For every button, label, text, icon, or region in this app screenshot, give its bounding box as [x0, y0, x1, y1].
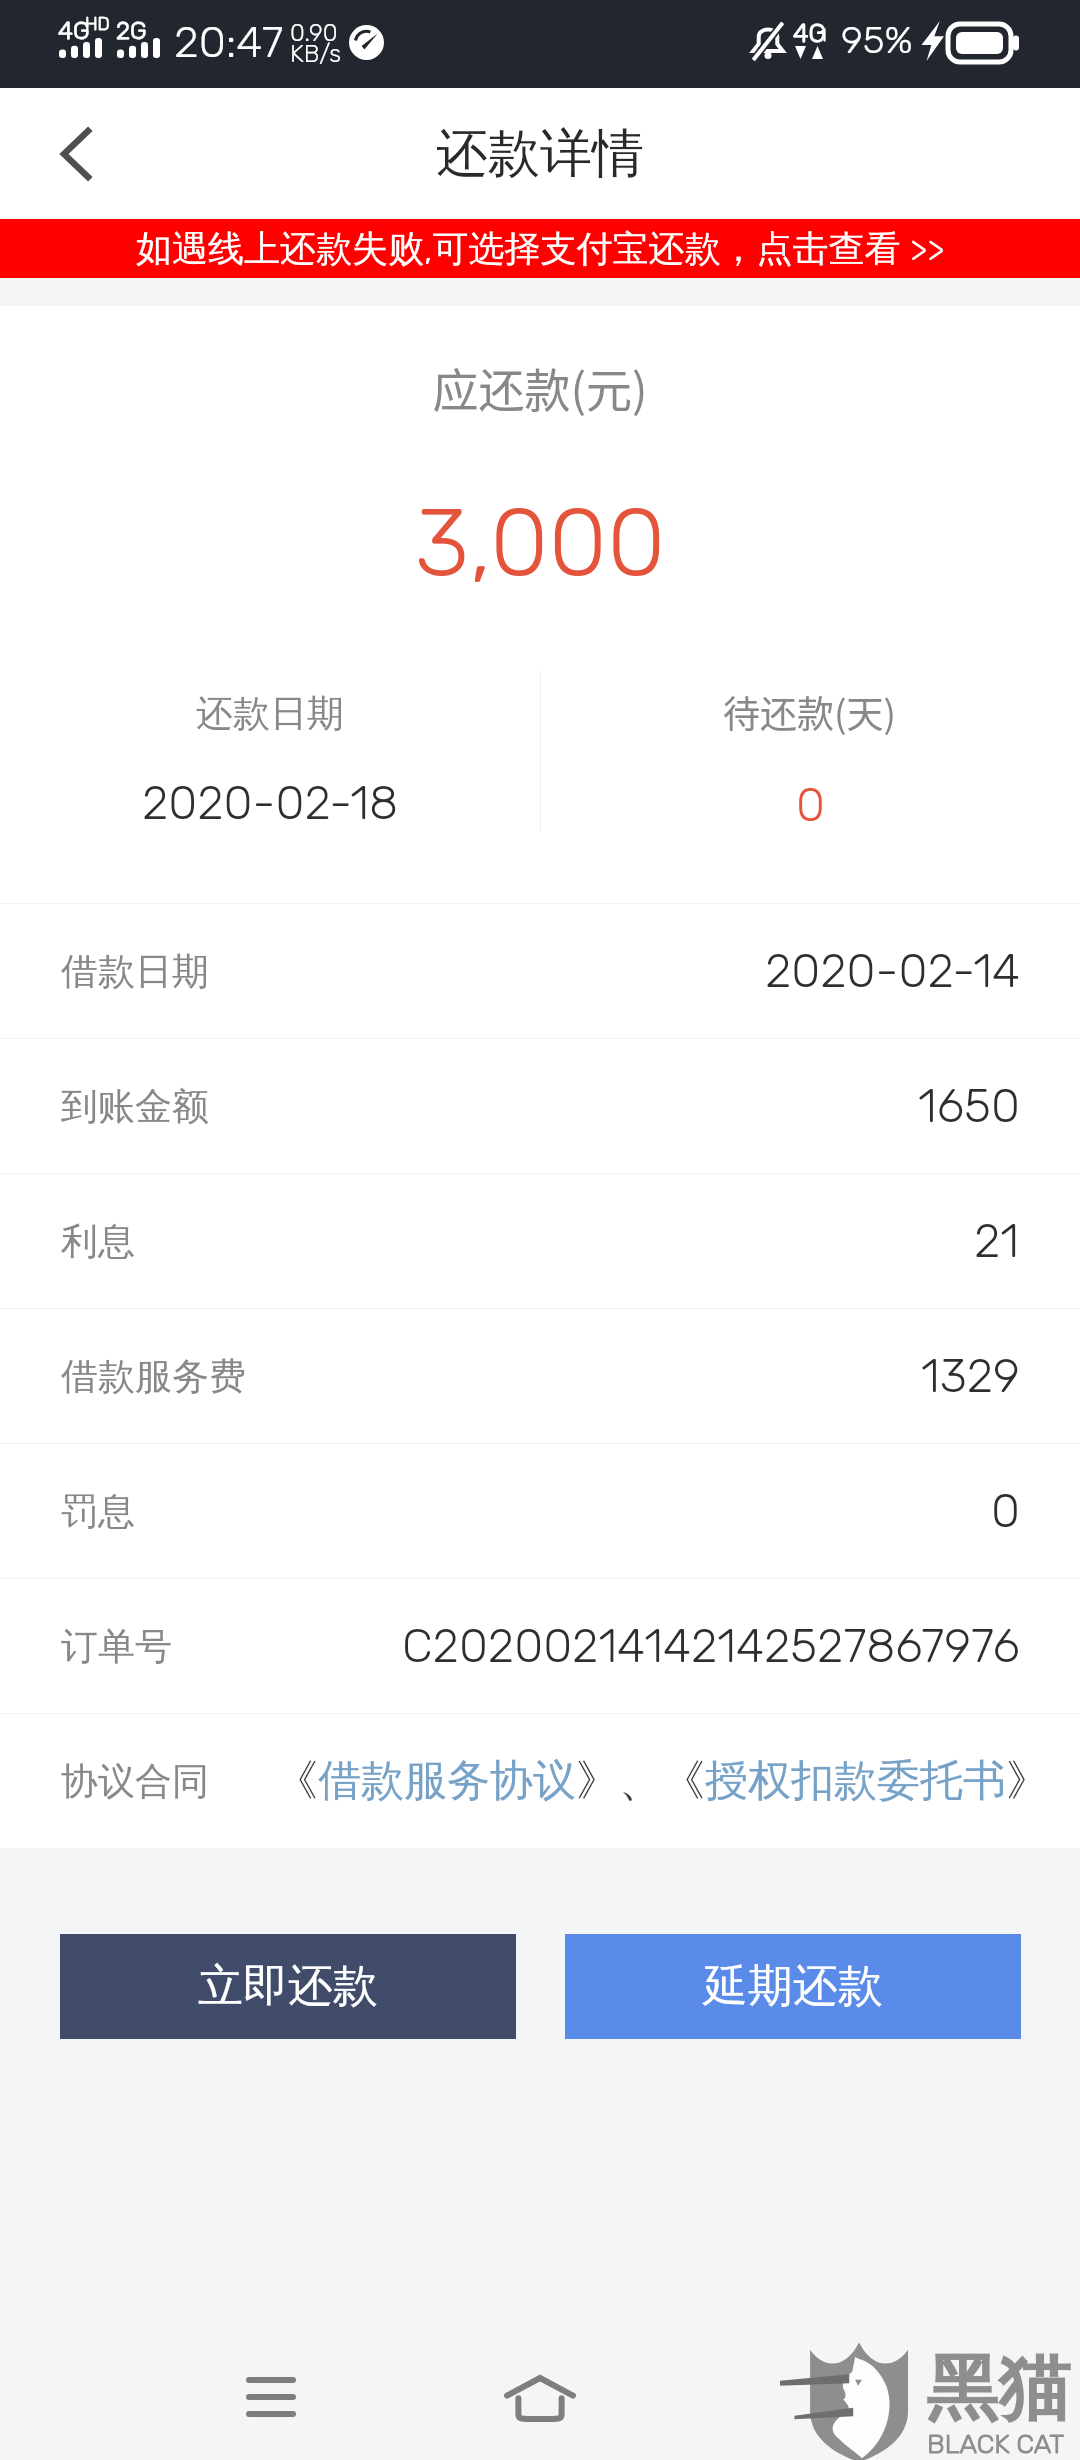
staticText: 》、《: [576, 1754, 705, 1808]
staticText: 1: [820, 26, 827, 45]
staticText: 21: [974, 1213, 1020, 1269]
staticText: 立即还款: [198, 1958, 378, 2015]
button[interactable]: 授权扣款委托书: [705, 1754, 1006, 1808]
button[interactable]: Back: [0, 88, 130, 219]
staticText: C20200214142142527867976: [402, 1618, 1020, 1674]
button[interactable]: 如遇线上还款失败,可选择支付宝还款，点击查看 >>: [0, 219, 1080, 278]
staticText: 4G: [793, 18, 826, 49]
staticText: KB/s: [290, 40, 342, 68]
staticText: HD: [85, 13, 110, 34]
staticText: 利息: [61, 1218, 135, 1265]
staticText: 借款服务费: [61, 1353, 246, 1400]
staticText: 1329: [921, 1348, 1020, 1404]
staticText: 2020-02-14: [765, 943, 1020, 999]
staticText: 还款详情: [436, 121, 644, 187]
staticText: 2G: [116, 16, 147, 46]
staticText: 》: [1006, 1754, 1020, 1808]
staticText: 0.90: [290, 19, 338, 47]
staticText: 95%: [841, 17, 913, 62]
staticText: 协议合同: [61, 1758, 209, 1805]
staticText: 0: [796, 777, 825, 833]
staticText: 0: [991, 1483, 1020, 1539]
staticText: BLACK CAT: [927, 2428, 1065, 2460]
staticText: 如遇线上还款失败,可选择支付宝还款，点击查看 >>: [136, 226, 945, 271]
staticText: 待还款(天): [723, 685, 897, 739]
button[interactable]: Menu: [201, 2332, 341, 2460]
staticText: 到账金额: [61, 1083, 209, 1130]
staticText: 《: [275, 1754, 318, 1808]
button[interactable]: 立即还款: [60, 1934, 516, 2039]
staticText: 2020-02-18: [142, 775, 399, 831]
staticText: 3,000: [0, 486, 1080, 599]
staticText: 应还款(元): [0, 354, 1080, 421]
button[interactable]: 借款服务协议: [318, 1754, 576, 1808]
staticText: 授权扣款委托书: [705, 1754, 1006, 1808]
staticText: 还款日期: [196, 690, 344, 737]
staticText: 20:47: [174, 16, 284, 68]
button[interactable]: 延期还款: [565, 1934, 1021, 2039]
staticText: 罚息: [61, 1488, 135, 1535]
staticText: 订单号: [61, 1623, 172, 1670]
staticText: 黑猫: [926, 2344, 1070, 2435]
staticText: 1650: [918, 1078, 1020, 1134]
staticText: 借款日期: [61, 948, 209, 995]
staticText: 延期还款: [703, 1958, 883, 2015]
button[interactable]: Home: [470, 2332, 610, 2460]
staticText: 4G: [58, 16, 90, 46]
staticText: 借款服务协议: [318, 1754, 576, 1808]
